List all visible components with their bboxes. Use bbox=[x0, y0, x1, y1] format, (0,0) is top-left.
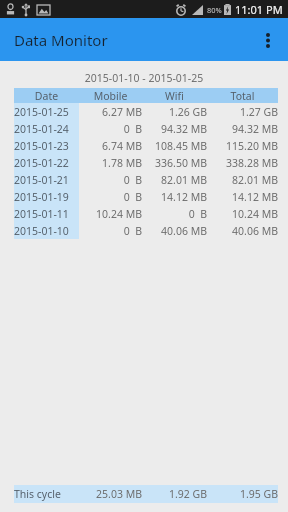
button[interactable]: 2015-01-11 bbox=[14, 205, 278, 222]
staticText: 2015-01-11 bbox=[14, 207, 69, 221]
staticText: 2015-01-22 bbox=[14, 156, 69, 170]
staticText: 0 B bbox=[79, 122, 142, 136]
button[interactable]: 2015-01-10 bbox=[14, 222, 278, 239]
staticText: 40.06 MB bbox=[142, 224, 207, 238]
staticText: 14.12 MB bbox=[142, 190, 207, 204]
staticText: This cycle bbox=[14, 487, 61, 501]
staticText: 82.01 MB bbox=[207, 173, 278, 187]
staticText: 80% bbox=[207, 5, 222, 15]
staticText: 10.24 MB bbox=[207, 207, 278, 221]
staticText: 94.32 MB bbox=[142, 122, 207, 136]
staticText: 0 B bbox=[79, 224, 142, 238]
staticText: Mobile bbox=[79, 89, 142, 103]
button[interactable]: 2015-01-21 bbox=[14, 171, 278, 188]
staticText: 25.03 MB bbox=[79, 487, 142, 501]
button[interactable]: 2015-01-23 bbox=[14, 137, 278, 154]
staticText: 2015-01-24 bbox=[14, 122, 69, 136]
staticText: 1.95 GB bbox=[207, 487, 278, 501]
button[interactable]: 2015-01-19 bbox=[14, 188, 278, 205]
staticText: 1.26 GB bbox=[142, 105, 207, 119]
staticText: 6.27 MB bbox=[79, 105, 142, 119]
button[interactable]: 2015-01-22 bbox=[14, 154, 278, 171]
staticText: 336.50 MB bbox=[142, 156, 207, 170]
staticText: 1.78 MB bbox=[79, 156, 142, 170]
staticText: 0 B bbox=[79, 173, 142, 187]
staticText: 82.01 MB bbox=[142, 173, 207, 187]
staticText: 338.28 MB bbox=[207, 156, 278, 170]
button[interactable]: This cycle bbox=[14, 485, 278, 503]
button[interactable]: 2015-01-25 bbox=[14, 103, 278, 120]
staticText: 1.27 GB bbox=[207, 105, 278, 119]
staticText: 2015-01-10 - 2015-01-25 bbox=[0, 71, 288, 85]
staticText: Wifi bbox=[142, 89, 207, 103]
staticText: Total bbox=[207, 89, 278, 103]
staticText: 115.20 MB bbox=[207, 139, 278, 153]
staticText: 2015-01-23 bbox=[14, 139, 69, 153]
button[interactable]: 2015-01-24 bbox=[14, 120, 278, 137]
staticText: 0 B bbox=[79, 190, 142, 204]
staticText: Data Monitor bbox=[14, 30, 108, 50]
staticText: 2015-01-10 bbox=[14, 224, 69, 238]
staticText: Date bbox=[14, 89, 79, 103]
staticText: 11:01 PM bbox=[235, 2, 283, 17]
staticText: 40.06 MB bbox=[207, 224, 278, 238]
staticText: 94.32 MB bbox=[207, 122, 278, 136]
staticText: 0 B bbox=[142, 207, 207, 221]
staticText: 1.92 GB bbox=[142, 487, 207, 501]
staticText: 10.24 MB bbox=[79, 207, 142, 221]
staticText: 2015-01-25 bbox=[14, 105, 69, 119]
staticText: 6.74 MB bbox=[79, 139, 142, 153]
staticText: 2015-01-19 bbox=[14, 190, 69, 204]
button[interactable]: More options bbox=[248, 20, 288, 60]
staticText: 14.12 MB bbox=[207, 190, 278, 204]
staticText: 2015-01-21 bbox=[14, 173, 69, 187]
staticText: 108.45 MB bbox=[142, 139, 207, 153]
